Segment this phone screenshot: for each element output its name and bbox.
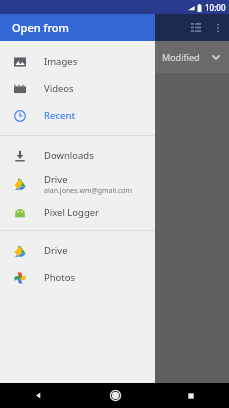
button[interactable]: Modified [155, 41, 229, 73]
staticText: 10:00 [205, 2, 226, 13]
button[interactable]: List view [185, 17, 207, 39]
staticText: Drive [44, 244, 68, 257]
button[interactable]: Home [77, 383, 153, 408]
staticText: Photos [44, 271, 76, 284]
button[interactable]: Videos [0, 75, 155, 102]
staticText: Open from [12, 20, 70, 35]
button[interactable]: Images [0, 48, 155, 75]
button[interactable]: More options [207, 17, 229, 39]
button[interactable]: Drive [0, 237, 155, 264]
staticText: Recent [44, 109, 76, 122]
staticText: Drive [44, 173, 68, 186]
button[interactable]: Drive [0, 169, 155, 199]
staticText: Pixel Logger [44, 206, 100, 219]
button[interactable]: Recent [0, 102, 155, 129]
button[interactable]: Recents [153, 383, 229, 408]
staticText: alan.jones.wm@gmail.com [44, 186, 133, 196]
button[interactable]: Pixel Logger [0, 199, 155, 226]
button[interactable]: Downloads [0, 142, 155, 169]
button[interactable]: Photos [0, 264, 155, 291]
staticText: Downloads [44, 149, 94, 162]
staticText: Images [44, 55, 78, 68]
staticText: Videos [44, 82, 74, 95]
button[interactable]: Back [0, 383, 77, 408]
staticText: Modified [162, 51, 200, 63]
